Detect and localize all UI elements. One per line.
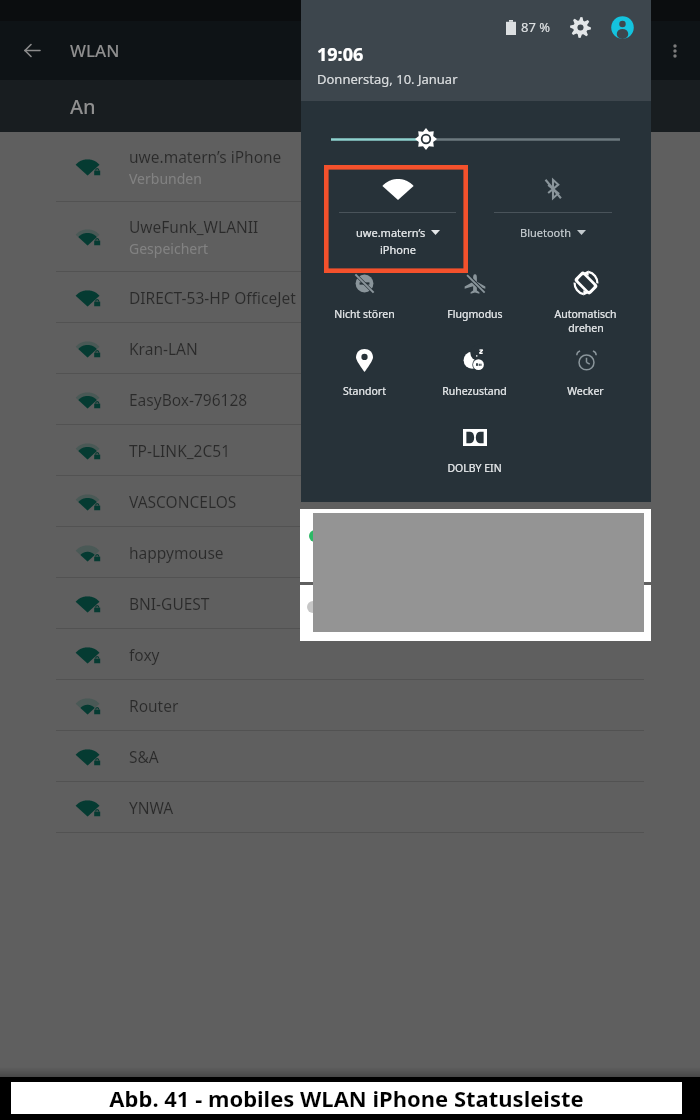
button[interactable]: DOLBY EIN: [419, 419, 530, 496]
staticText: BNI-GUEST: [129, 593, 210, 614]
button[interactable]: BNI-GUEST: [0, 578, 700, 629]
button[interactable]: Wecker: [530, 342, 641, 419]
staticText: uwe.matern’s: [356, 225, 426, 240]
button[interactable]: Flugmodus: [419, 265, 530, 342]
button[interactable]: Ruhezustand: [419, 342, 530, 419]
button[interactable]: Kran-LAN: [0, 323, 700, 374]
button[interactable]: More options: [650, 21, 700, 80]
button[interactable]: Brightness: [301, 126, 651, 153]
staticText: happymouse: [129, 542, 224, 563]
staticText: 19:06: [317, 42, 364, 67]
button[interactable]: Notification: [300, 509, 651, 582]
button[interactable]: YNWA: [0, 782, 700, 833]
staticText: Nicht stören: [334, 307, 395, 321]
button[interactable]: DIRECT-53-HP OfficeJet Pro 8730: [0, 272, 700, 323]
staticText: foxy: [129, 644, 160, 665]
staticText: Verbunden: [129, 169, 202, 188]
staticText: Wecker: [567, 384, 604, 398]
staticText: Ruhezustand: [442, 384, 507, 398]
staticText: UweFunk_WLANII: [129, 216, 259, 237]
staticText: 87 %: [521, 18, 551, 36]
staticText: TP-LINK_2C51: [129, 440, 231, 461]
staticText: iPhone: [380, 242, 416, 257]
staticText: Kran-LAN: [129, 338, 198, 359]
button[interactable]: Notification: [300, 585, 651, 641]
button[interactable]: S&A: [0, 731, 700, 782]
button[interactable]: Bluetooth: [475, 165, 631, 273]
button[interactable]: TP-LINK_2C51: [0, 425, 700, 476]
button[interactable]: VASCONCELOS: [0, 476, 700, 527]
staticText: Automatisch: [554, 307, 617, 321]
button[interactable]: uwe.matern’s: [320, 165, 475, 273]
staticText: DOLBY EIN: [447, 461, 502, 475]
button[interactable]: Automatisch: [530, 265, 641, 342]
staticText: Gespeichert: [129, 239, 209, 258]
staticText: Router: [129, 695, 179, 716]
staticText: Abb. 41 - mobiles WLAN iPhone Statusleis…: [109, 1083, 584, 1113]
button[interactable]: UweFunk_WLANII: [0, 202, 700, 272]
button[interactable]: happymouse: [0, 527, 700, 578]
staticText: uwe.matern’s iPhone: [129, 146, 282, 167]
button[interactable]: Settings: [567, 14, 593, 40]
button[interactable]: foxy: [0, 629, 700, 680]
staticText: An: [70, 93, 96, 120]
staticText: WLAN: [70, 39, 120, 62]
staticText: Standort: [343, 384, 386, 398]
button[interactable]: Router: [0, 680, 700, 731]
button[interactable]: An: [0, 80, 700, 132]
staticText: Flugmodus: [447, 307, 503, 321]
staticText: YNWA: [129, 797, 174, 818]
staticText: DIRECT-53-HP OfficeJet Pro 8730: [129, 287, 365, 308]
button[interactable]: uwe.matern’s iPhone: [0, 132, 700, 202]
button[interactable]: Back: [0, 21, 70, 80]
staticText: VASCONCELOS: [129, 491, 237, 512]
staticText: S&A: [129, 746, 159, 767]
button[interactable]: User profile: [609, 14, 635, 40]
staticText: Bluetooth: [520, 225, 572, 240]
staticText: drehen: [568, 321, 604, 335]
button[interactable]: Nicht stören: [309, 265, 419, 342]
staticText: Donnerstag, 10. Januar: [317, 70, 458, 88]
staticText: EasyBox-796128: [129, 389, 248, 410]
button[interactable]: EasyBox-796128: [0, 374, 700, 425]
button[interactable]: Standort: [309, 342, 419, 419]
